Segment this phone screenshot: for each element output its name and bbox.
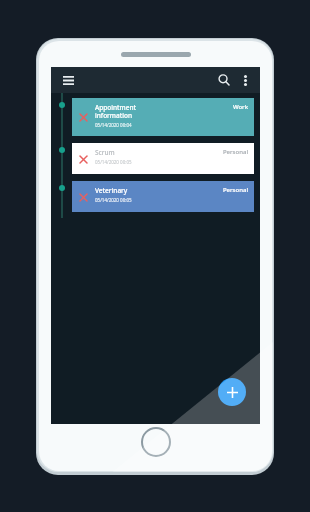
button[interactable]: Delete Appointment information — [75, 109, 91, 125]
staticText: Work — [232, 103, 248, 111]
staticText: Veterinary — [95, 186, 128, 195]
button[interactable]: Search — [213, 69, 235, 91]
button[interactable]: Add task — [218, 378, 246, 406]
button[interactable]: Delete Appointment information — [72, 98, 254, 136]
button[interactable]: Delete Veterinary — [72, 181, 254, 212]
staticText: Personal — [222, 186, 248, 194]
staticText: 05/14/2020 00:05 — [95, 197, 132, 203]
staticText: 05/14/2020 00:04 — [95, 122, 132, 128]
staticText: Scrum — [95, 148, 115, 157]
button[interactable]: Delete Scrum — [72, 143, 254, 174]
button[interactable]: Menu — [58, 70, 78, 90]
button[interactable]: More options — [235, 70, 255, 90]
button[interactable]: Delete Scrum — [75, 151, 91, 167]
staticText: Appointment information — [95, 103, 137, 120]
button[interactable]: Delete Veterinary — [75, 189, 91, 205]
staticText: 05/14/2020 00:05 — [95, 159, 132, 165]
staticText: Personal — [222, 148, 248, 156]
